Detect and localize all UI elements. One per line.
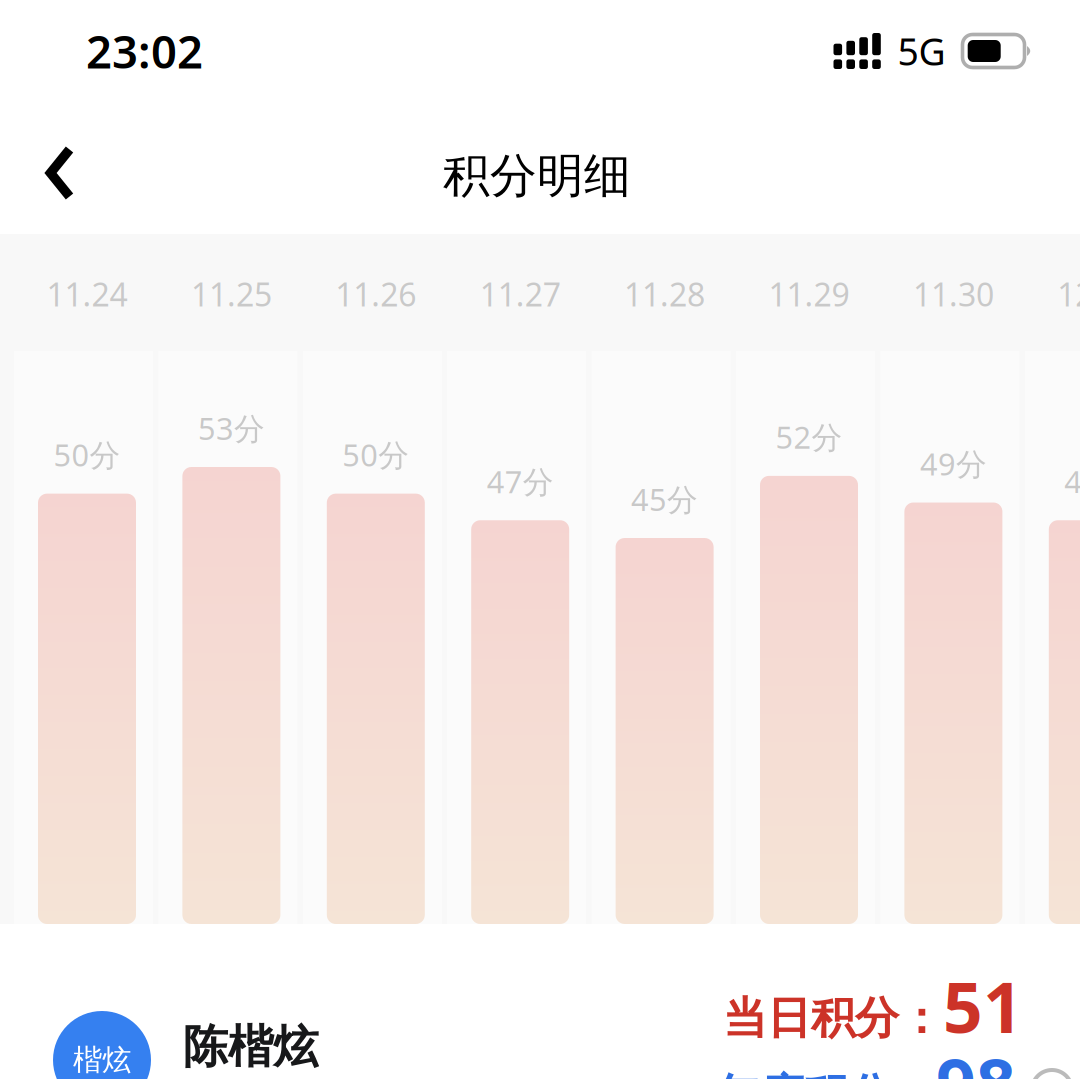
staticText: 11.27 <box>480 273 561 315</box>
staticText: 11.26 <box>335 273 416 315</box>
staticText: 楷炫 <box>73 1042 131 1078</box>
staticText: 51 <box>943 960 1023 1052</box>
staticText: 52分 <box>775 416 842 457</box>
staticText: 12.01 <box>1057 273 1080 315</box>
button[interactable]: 返回 <box>5 118 115 228</box>
staticText: 11.29 <box>768 273 849 315</box>
staticText: 5G <box>897 26 945 76</box>
staticText: 49分 <box>920 443 987 484</box>
staticText: 50分 <box>53 434 120 475</box>
staticText: 23:02 <box>86 21 203 81</box>
staticText: 53分 <box>198 408 265 448</box>
staticText: 陈楷炫 <box>183 1019 318 1075</box>
staticText: 47分 <box>487 461 554 502</box>
staticText: 11.25 <box>191 273 272 315</box>
staticText: 当日积分： <box>723 991 943 1045</box>
staticText: 年度积分： <box>716 1068 936 1079</box>
staticText: 11.24 <box>46 273 127 315</box>
staticText: 47分 <box>1064 461 1080 502</box>
staticText: 11.28 <box>624 273 705 315</box>
staticText: 98 <box>936 1037 1016 1079</box>
staticText: 积分明细 <box>443 147 631 205</box>
staticText: 11.30 <box>913 273 994 315</box>
staticText: 45分 <box>631 479 698 519</box>
staticText: 50分 <box>342 434 409 475</box>
